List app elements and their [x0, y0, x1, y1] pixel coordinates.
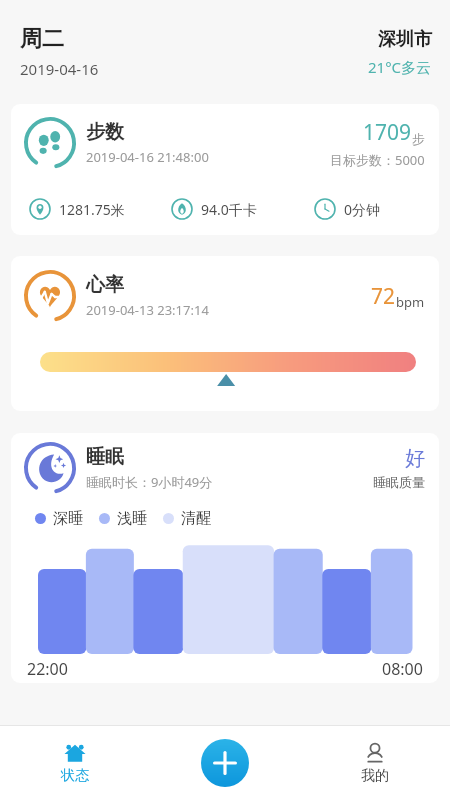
staticText: 2019-04-16 21:48:00: [86, 148, 209, 166]
staticText: 浅睡: [117, 509, 147, 528]
staticText: 清醒: [181, 509, 211, 528]
staticText: 状态: [61, 767, 89, 785]
staticText: 步: [412, 131, 425, 147]
staticText: 步数: [86, 120, 124, 144]
staticText: 1709: [363, 118, 412, 147]
button[interactable]: Add: [201, 739, 249, 787]
staticText: 0分钟: [344, 200, 381, 219]
staticText: 21°C多云: [368, 57, 432, 77]
staticText: 1281.75米: [59, 200, 125, 219]
staticText: bpm: [396, 293, 425, 311]
staticText: 目标步数：5000: [330, 151, 425, 169]
button[interactable]: 我的: [300, 725, 450, 800]
staticText: 睡眠时长：9小时49分: [86, 473, 213, 491]
button[interactable]: 状态: [0, 725, 150, 800]
staticText: 2019-04-16: [20, 59, 99, 79]
staticText: 我的: [361, 767, 389, 785]
staticText: 2019-04-13 23:17:14: [86, 301, 209, 319]
staticText: 深睡: [53, 509, 83, 528]
staticText: 22:00: [27, 658, 68, 679]
button[interactable]: 步数: [11, 104, 439, 235]
staticText: 好: [405, 446, 425, 471]
staticText: 心率: [86, 273, 124, 297]
staticText: 72: [371, 282, 396, 311]
staticText: 睡眠质量: [373, 474, 425, 490]
staticText: 睡眠: [86, 445, 124, 469]
button[interactable]: 睡眠: [11, 433, 439, 683]
button[interactable]: 心率: [11, 256, 439, 411]
staticText: 08:00: [382, 658, 423, 679]
staticText: 深圳市: [378, 28, 432, 51]
staticText: 周二: [20, 25, 64, 53]
staticText: 94.0千卡: [201, 200, 257, 219]
